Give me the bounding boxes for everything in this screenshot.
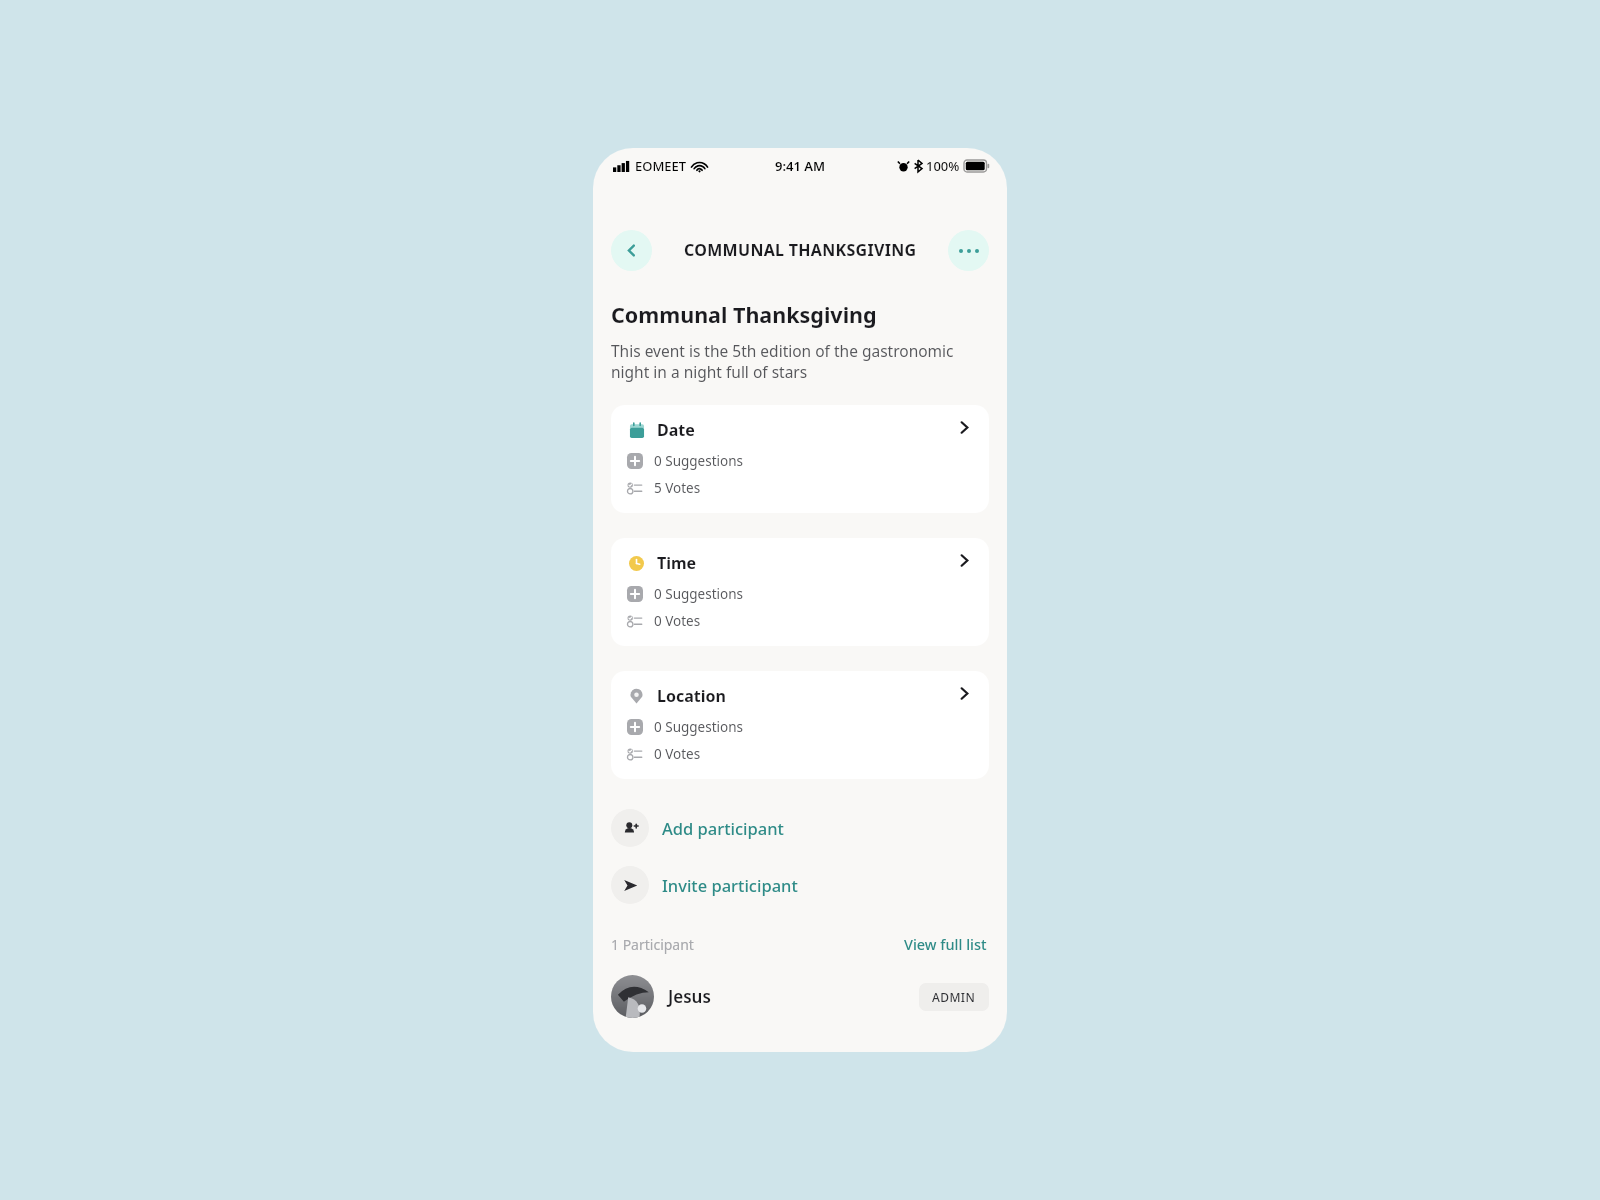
staticText: Time (657, 552, 697, 574)
button[interactable]: Date (611, 405, 989, 513)
staticText: EOMEET (635, 157, 687, 175)
staticText: 1 Participant (611, 935, 694, 954)
staticText: Communal Thanksgiving (611, 300, 877, 329)
staticText: ADMIN (932, 989, 976, 1005)
staticText: View full list (904, 934, 987, 954)
staticText: 0 Votes (654, 612, 701, 630)
staticText: Invite participant (662, 874, 798, 896)
staticText: Add participant (662, 817, 784, 839)
staticText: Location (657, 685, 726, 707)
button[interactable]: Invite participant (611, 862, 989, 908)
staticText: 9:41 AM (775, 157, 826, 175)
button[interactable]: Location (611, 671, 989, 779)
button[interactable]: Time (611, 538, 989, 646)
staticText: COMMUNAL THANKSGIVING (684, 239, 917, 261)
button[interactable]: Jesus (611, 972, 989, 1021)
staticText: 0 Suggestions (654, 718, 744, 736)
staticText: Jesus (668, 985, 711, 1008)
button[interactable]: View full list (902, 932, 989, 956)
button[interactable]: Add participant (611, 805, 989, 851)
staticText: This event is the 5th edition of the gas… (611, 340, 954, 383)
staticText: Date (657, 419, 695, 441)
staticText: 100% (926, 157, 960, 175)
staticText: 0 Votes (654, 745, 701, 763)
staticText: 0 Suggestions (654, 452, 744, 470)
button[interactable]: Back (611, 230, 652, 271)
staticText: 5 Votes (654, 479, 701, 497)
button[interactable]: More options (948, 230, 989, 271)
staticText: 0 Suggestions (654, 585, 744, 603)
